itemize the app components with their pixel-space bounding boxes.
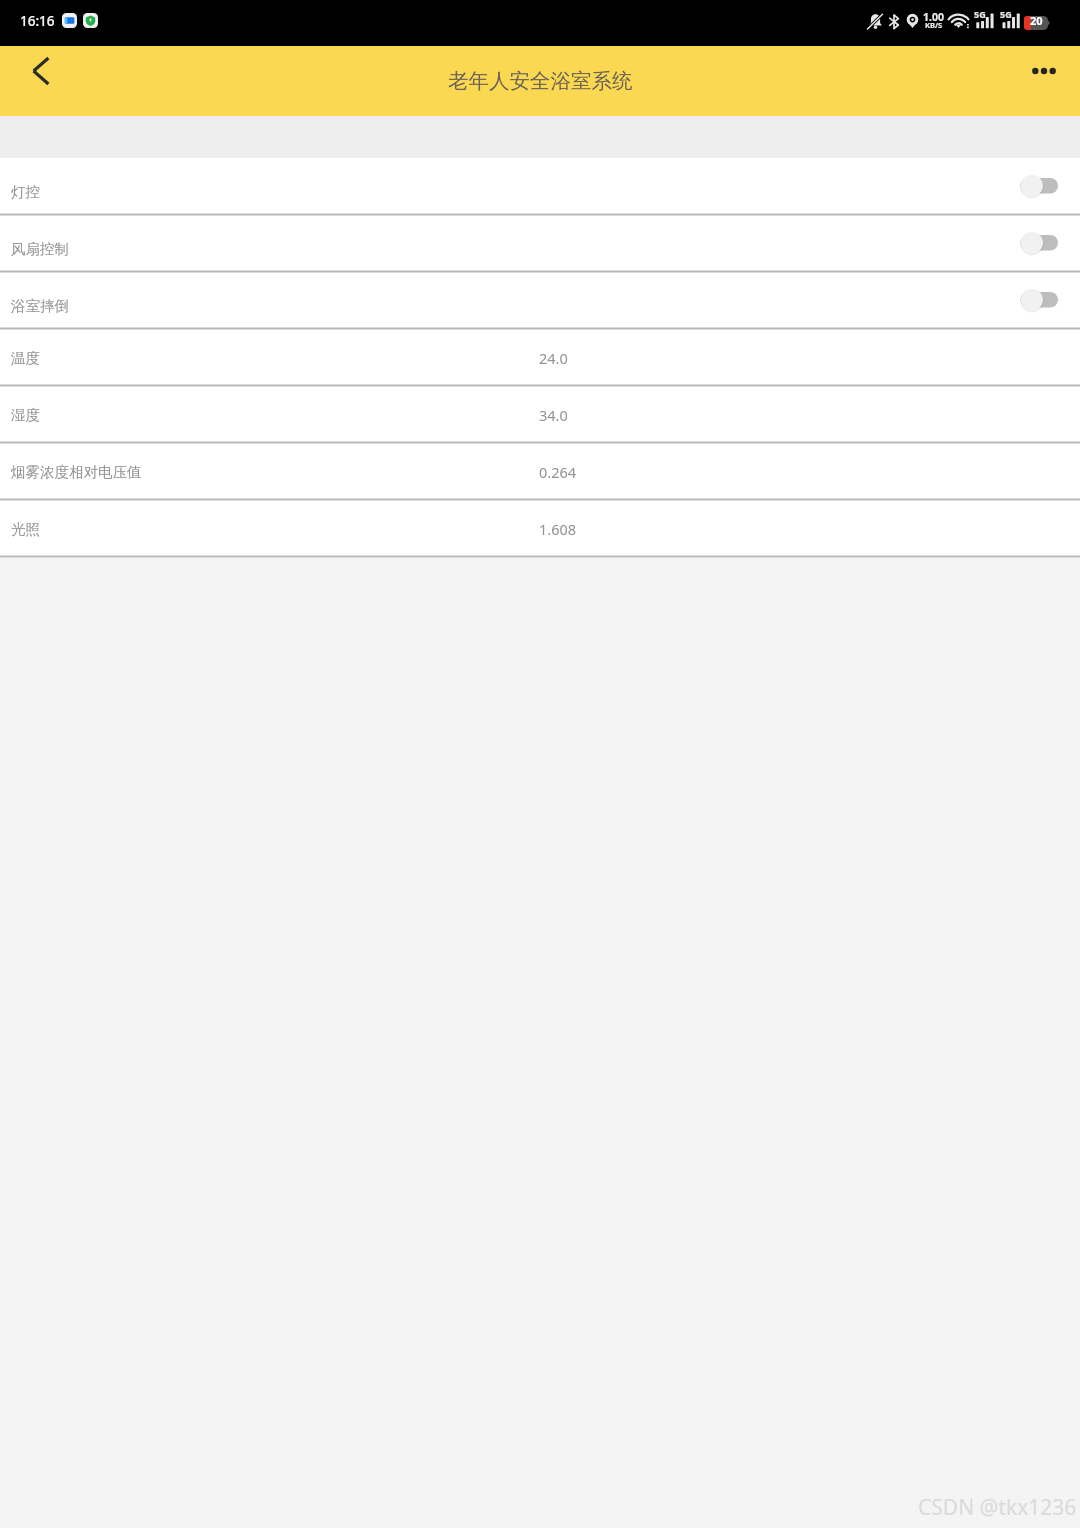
button[interactable]: Toggle 灯控: [1020, 172, 1058, 202]
button[interactable]: 温度: [0, 329, 1080, 386]
staticText: 灯控: [11, 183, 40, 201]
button[interactable]: Back: [6, 46, 76, 96]
staticText: 20: [1030, 13, 1043, 28]
staticText: 1.608: [539, 519, 577, 539]
button[interactable]: 光照: [0, 500, 1080, 557]
staticText: CSDN @tkx1236: [918, 1493, 1077, 1522]
button[interactable]: Toggle 浴室摔倒: [1020, 286, 1058, 316]
staticText: 温度: [11, 349, 40, 367]
button[interactable]: 湿度: [0, 386, 1080, 443]
staticText: 34.0: [539, 405, 568, 425]
staticText: KB/S: [925, 20, 943, 30]
button[interactable]: 风扇控制: [0, 215, 1080, 272]
staticText: 湿度: [11, 406, 40, 424]
staticText: 5G: [1000, 8, 1012, 20]
button[interactable]: 浴室摔倒: [0, 272, 1080, 329]
button[interactable]: Toggle 风扇控制: [1020, 229, 1058, 259]
button[interactable]: 烟雾浓度相对电压值: [0, 443, 1080, 500]
staticText: 0.264: [539, 462, 577, 482]
staticText: 老年人安全浴室系统: [448, 68, 633, 94]
staticText: 浴室摔倒: [11, 297, 69, 315]
staticText: 光照: [11, 520, 40, 538]
staticText: 1.00: [923, 10, 944, 24]
button[interactable]: More options: [1009, 46, 1079, 96]
staticText: 24.0: [539, 348, 568, 368]
staticText: 16:16: [20, 12, 55, 30]
staticText: 风扇控制: [11, 240, 69, 258]
staticText: 烟雾浓度相对电压值: [11, 463, 142, 481]
staticText: 5G: [974, 8, 986, 20]
button[interactable]: 灯控: [0, 158, 1080, 215]
